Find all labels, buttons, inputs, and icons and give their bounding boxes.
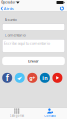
button[interactable]: LinkedIn [40, 73, 50, 83]
button[interactable]: Categorías [0, 107, 33, 118]
button[interactable]: Facebook [2, 73, 12, 83]
staticText: Asunto [5, 17, 17, 22]
button[interactable]: Twitter [15, 73, 25, 83]
staticText: Enviar [28, 58, 39, 64]
button[interactable]: YouTube [52, 73, 62, 83]
button[interactable]: Google Plus [27, 73, 37, 83]
staticText: Contacto [44, 114, 56, 118]
staticText: g+ [29, 74, 35, 81]
staticText: Comentario [5, 32, 26, 38]
button[interactable]: Contacto [33, 107, 67, 118]
staticText: Categorías [10, 114, 24, 117]
button[interactable]: Enviar [2, 57, 65, 65]
button[interactable]: Atrás [0, 5, 16, 12]
staticText: in [42, 74, 47, 81]
staticText: Atrás [4, 6, 14, 11]
staticText: Operador [1, 1, 15, 4]
staticText: f [6, 73, 9, 83]
staticText: Escribe aquí tu comentario [4, 41, 50, 46]
button[interactable]: Actualizar [58, 5, 67, 12]
